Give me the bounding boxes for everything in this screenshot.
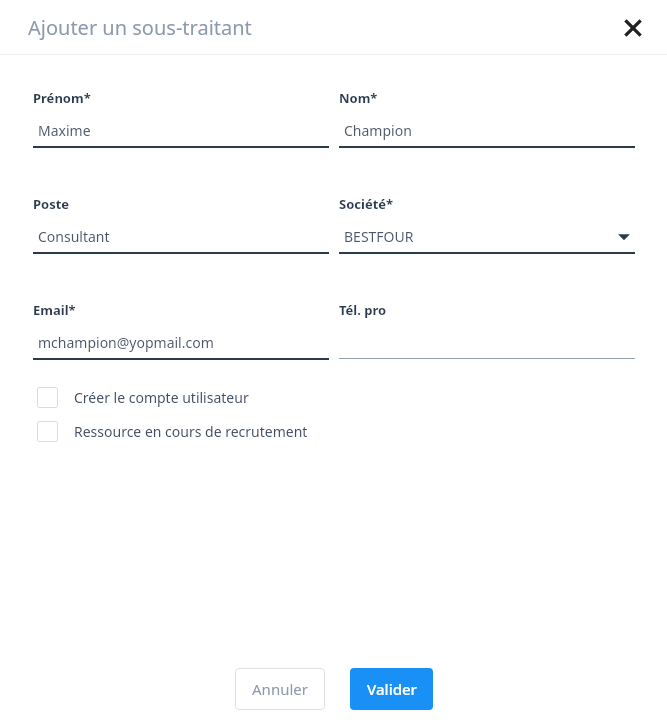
- button[interactable]: Ressource en cours de recrutement: [0, 414, 667, 448]
- staticText: Tél. pro: [339, 301, 387, 319]
- button[interactable]: Close: [613, 8, 653, 48]
- button[interactable]: Créer le compte utilisateur: [0, 380, 667, 414]
- staticText: Valider: [367, 679, 417, 699]
- button[interactable]: Tél. pro: [339, 301, 635, 359]
- staticText: Champion: [344, 121, 635, 140]
- staticText: Email*: [33, 301, 76, 319]
- staticText: mchampion@yopmail.com: [38, 333, 329, 352]
- button[interactable]: Annuler: [235, 668, 325, 710]
- button[interactable]: Poste: [33, 195, 329, 254]
- staticText: Ajouter un sous-traitant: [28, 14, 252, 41]
- button[interactable]: Prénom*: [33, 89, 329, 148]
- button[interactable]: Email*: [33, 301, 329, 360]
- staticText: Consultant: [38, 227, 329, 246]
- staticText: Société*: [339, 195, 394, 213]
- button[interactable]: Valider: [350, 668, 433, 710]
- button[interactable]: Nom*: [339, 89, 635, 148]
- staticText: Ressource en cours de recrutement: [74, 422, 308, 441]
- staticText: Prénom*: [33, 89, 91, 107]
- staticText: Créer le compte utilisateur: [74, 388, 249, 407]
- staticText: Maxime: [38, 121, 329, 140]
- button[interactable]: Société*: [339, 195, 635, 254]
- staticText: Nom*: [339, 89, 378, 107]
- staticText: Annuler: [252, 679, 308, 699]
- staticText: Poste: [33, 195, 70, 213]
- staticText: BESTFOUR: [344, 227, 617, 246]
